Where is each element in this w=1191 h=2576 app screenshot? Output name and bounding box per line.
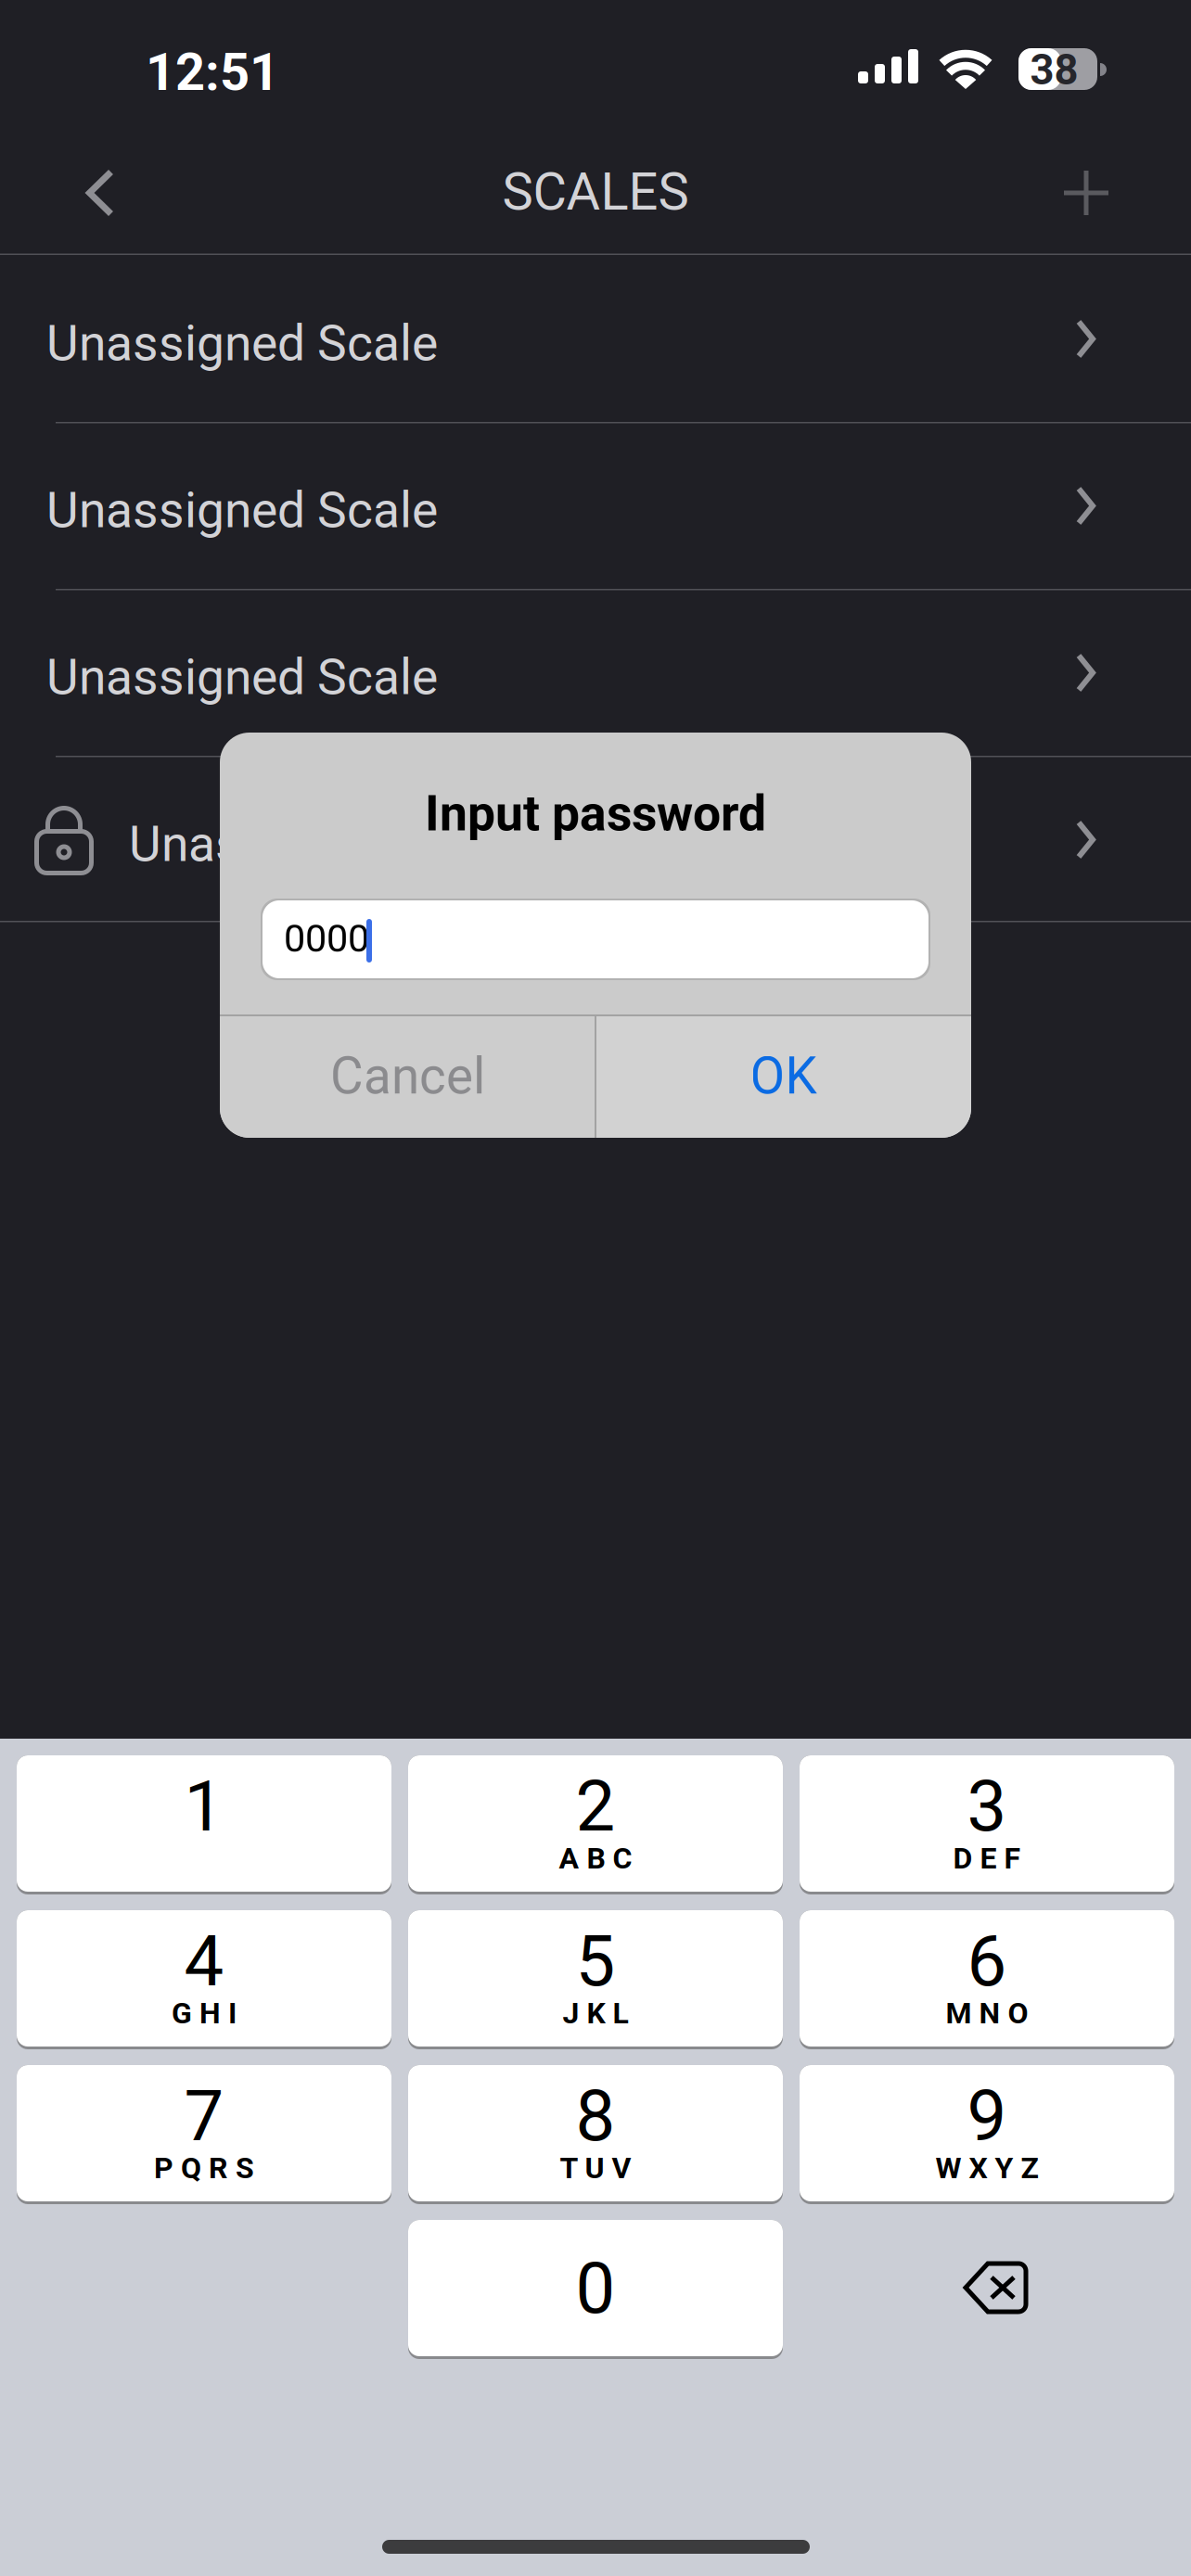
staticText: W X Y Z (935, 2151, 1038, 2185)
staticText: 5 (576, 1920, 615, 2003)
staticText: Cancel (330, 1046, 485, 1106)
staticText: 6 (967, 1920, 1007, 2003)
button[interactable]: Unassigned Scale (0, 756, 1191, 923)
staticText: D E F (953, 1841, 1021, 1876)
staticText: J K L (563, 1996, 628, 2030)
staticText: OK (750, 1046, 817, 1106)
staticText: 4 (184, 1920, 224, 2003)
button[interactable]: 5 (408, 1910, 783, 2049)
button[interactable]: 3 (800, 1755, 1174, 1894)
button[interactable]: Cancel (220, 1014, 595, 1138)
button[interactable]: OK (595, 1014, 971, 1138)
button[interactable]: 9 (800, 2065, 1174, 2204)
staticText: M N O (946, 1996, 1028, 2030)
staticText: 7 (184, 2075, 224, 2157)
button[interactable]: Unassigned Scale (0, 255, 1191, 422)
button[interactable]: 6 (800, 1910, 1174, 2049)
staticText: P Q R S (154, 2151, 254, 2185)
staticText: Unassigned Scale (46, 314, 438, 372)
staticText: Input password (425, 784, 766, 842)
button[interactable]: 8 (408, 2065, 783, 2204)
button[interactable]: Delete (800, 2220, 1174, 2356)
button[interactable]: Unassigned Scale (0, 589, 1191, 756)
button[interactable]: 4 (17, 1910, 391, 2049)
staticText: 0000 (284, 916, 369, 961)
staticText: 3 (967, 1765, 1007, 1848)
staticText: 9 (967, 2075, 1007, 2157)
staticText: A B C (559, 1841, 632, 1876)
staticText: Unassigned Scale (46, 648, 438, 706)
staticText: 12:51 (146, 42, 279, 103)
staticText: Unassigned Scale (129, 815, 520, 873)
button[interactable]: Unassigned Scale (0, 422, 1191, 589)
button[interactable]: 1 (17, 1755, 391, 1894)
staticText: 2 (576, 1765, 615, 1848)
staticText: G H I (172, 1996, 237, 2030)
button[interactable]: 2 (408, 1755, 783, 1894)
staticText: SCALES (502, 161, 689, 222)
staticText: Unassigned Scale (46, 481, 438, 539)
staticText: 38 (1030, 45, 1078, 95)
staticText: 1 (184, 1765, 224, 1848)
staticText: T U V (560, 2151, 631, 2185)
staticText: 8 (576, 2075, 615, 2157)
staticText: 0 (576, 2247, 615, 2330)
button[interactable]: 0 (408, 2220, 783, 2359)
button[interactable]: Add (1031, 142, 1142, 244)
button[interactable]: Back (45, 142, 156, 244)
button[interactable]: 7 (17, 2065, 391, 2204)
